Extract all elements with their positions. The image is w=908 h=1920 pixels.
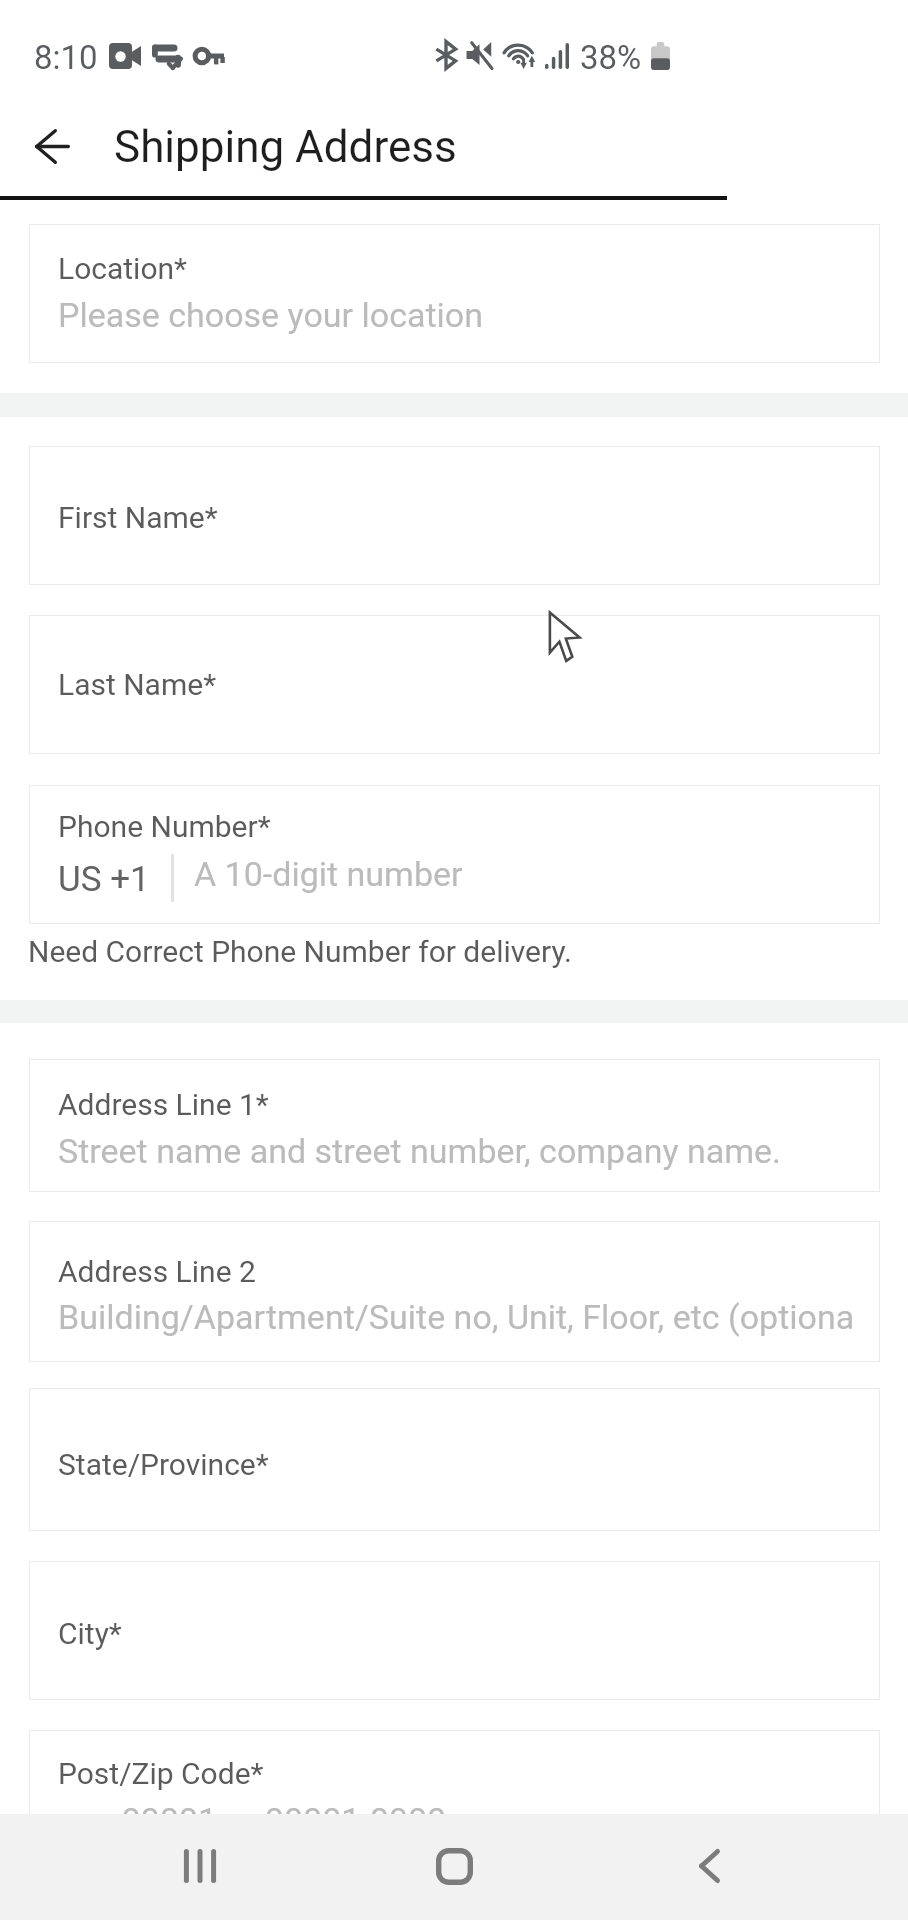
- staticText: US +1: [58, 859, 150, 900]
- staticText: 8:10: [34, 38, 98, 77]
- staticText: Need Correct Phone Number for delivery.: [28, 934, 572, 969]
- staticText: A 10-digit number: [194, 854, 463, 894]
- button[interactable]: Back: [661, 1818, 757, 1914]
- button[interactable]: Phone Number*: [29, 785, 880, 924]
- staticText: Please choose your location: [58, 295, 483, 335]
- button[interactable]: First Name*: [29, 446, 880, 585]
- staticText: Location*: [58, 251, 187, 286]
- staticText: e.g. 00001 or 00001-0000: [58, 1800, 447, 1840]
- button[interactable]: Address Line 2: [29, 1221, 880, 1362]
- staticText: Building/Apartment/Suite no, Unit, Floor…: [58, 1297, 852, 1337]
- staticText: Address Line 1*: [58, 1087, 269, 1122]
- staticText: State/Province*: [58, 1447, 269, 1482]
- staticText: Address Line 2: [58, 1254, 256, 1289]
- button[interactable]: State/Province*: [29, 1388, 880, 1531]
- staticText: Street name and street number, company n…: [58, 1131, 782, 1171]
- staticText: 38%: [580, 38, 642, 77]
- button[interactable]: Recent apps: [152, 1818, 248, 1914]
- staticText: Post/Zip Code*: [58, 1756, 264, 1791]
- button[interactable]: Home: [406, 1818, 502, 1914]
- button[interactable]: City*: [29, 1561, 880, 1700]
- button[interactable]: Post/Zip Code*: [29, 1730, 880, 1869]
- button[interactable]: Back: [16, 111, 88, 183]
- staticText: Shipping Address: [114, 121, 457, 173]
- staticText: Last Name*: [58, 667, 217, 702]
- button[interactable]: Location*: [29, 224, 880, 363]
- button[interactable]: Last Name*: [29, 615, 880, 754]
- staticText: City*: [58, 1616, 122, 1651]
- button[interactable]: Address Line 1*: [29, 1059, 880, 1192]
- staticText: First Name*: [58, 500, 218, 535]
- staticText: Phone Number*: [58, 809, 271, 844]
